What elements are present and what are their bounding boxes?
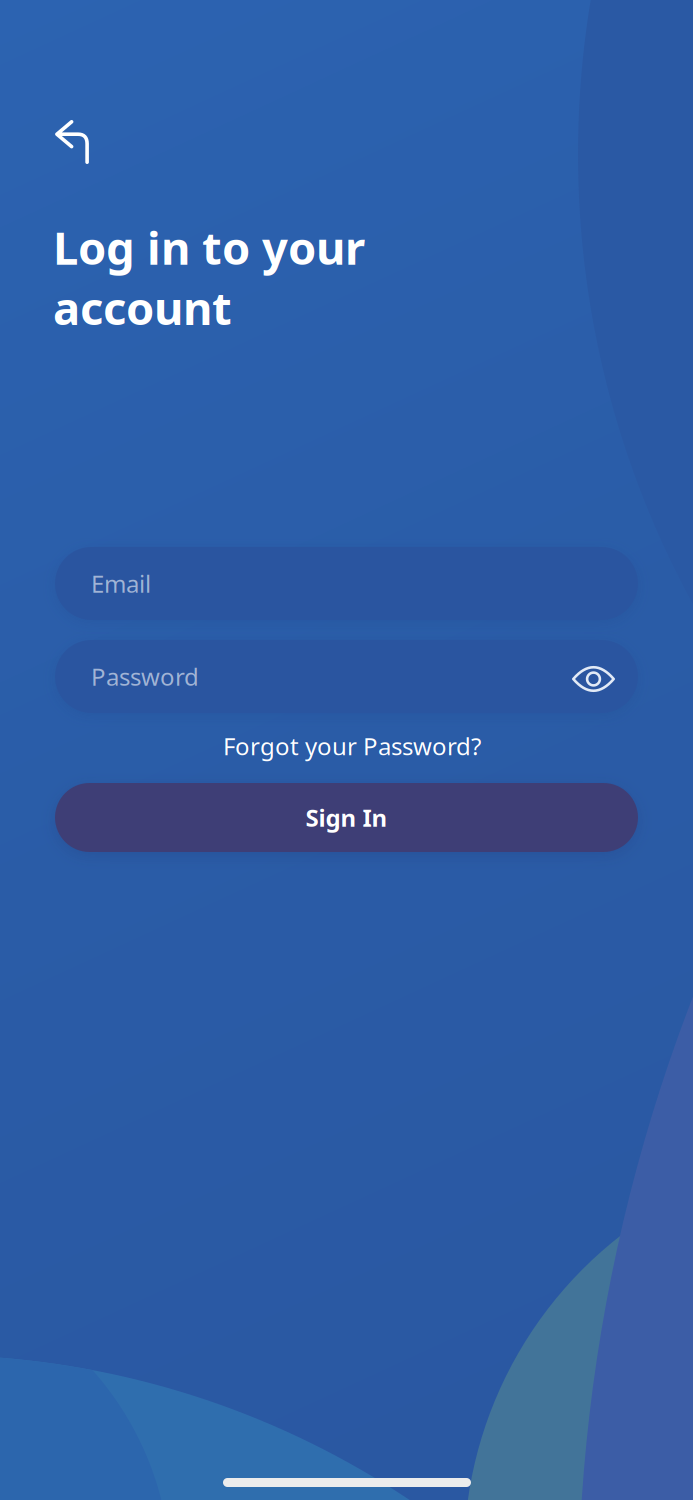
staticText: Log in to your account <box>53 217 365 337</box>
staticText: Email <box>91 568 151 599</box>
button[interactable]: Back <box>47 112 97 172</box>
staticText: Sign In <box>305 802 387 833</box>
button[interactable]: Sign In <box>55 783 638 852</box>
staticText: Password <box>91 661 199 692</box>
button[interactable]: Forgot your Password? <box>213 724 491 768</box>
staticText: Forgot your Password? <box>223 730 481 762</box>
button[interactable]: Show password <box>572 663 615 689</box>
button[interactable]: Email <box>55 547 638 620</box>
